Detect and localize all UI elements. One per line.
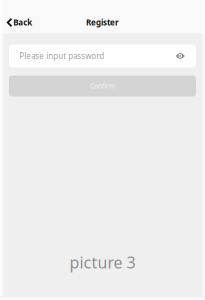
staticText: Register [86,17,119,28]
button[interactable]: Please input password [9,44,173,67]
button[interactable]: Show password [173,49,188,63]
staticText: Confirm [90,82,115,90]
staticText: Please input password [19,51,104,61]
staticText: picture 3 [69,252,135,273]
button[interactable]: Back [0,13,38,32]
staticText: Back [13,17,32,28]
